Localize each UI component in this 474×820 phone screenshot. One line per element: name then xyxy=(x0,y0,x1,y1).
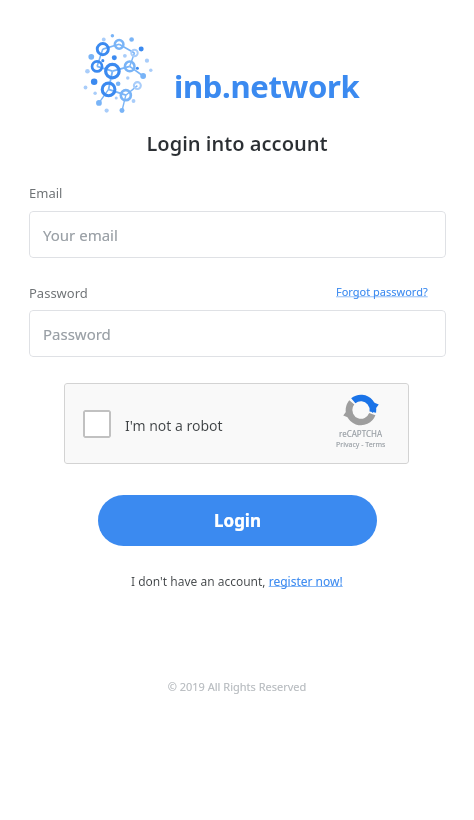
staticText: I don't have an account, register now! xyxy=(131,573,343,589)
button[interactable]: Password xyxy=(29,310,446,357)
staticText: Forgot password? xyxy=(336,284,428,299)
button[interactable]: Forgot password? xyxy=(334,282,430,301)
staticText: I'm not a robot xyxy=(125,416,223,435)
staticText: Your email xyxy=(43,225,118,245)
staticText: reCAPTCHA xyxy=(339,428,383,439)
staticText: inb.network xyxy=(174,65,360,107)
staticText: Password xyxy=(43,324,111,344)
other: inb.network logo xyxy=(74,28,170,124)
button[interactable]: I don't have an account, register now! xyxy=(127,569,347,593)
button[interactable]: I'm not a robot checkbox xyxy=(83,410,111,438)
staticText: © 2019 All Rights Reserved xyxy=(0,679,474,694)
staticText: Privacy - Terms xyxy=(336,440,386,450)
button[interactable]: Login xyxy=(98,495,377,546)
staticText: Login into account xyxy=(0,130,474,157)
staticText: Email xyxy=(29,184,63,202)
staticText: Login xyxy=(214,509,262,532)
staticText: Password xyxy=(29,284,88,302)
button[interactable]: Your email xyxy=(29,211,446,258)
